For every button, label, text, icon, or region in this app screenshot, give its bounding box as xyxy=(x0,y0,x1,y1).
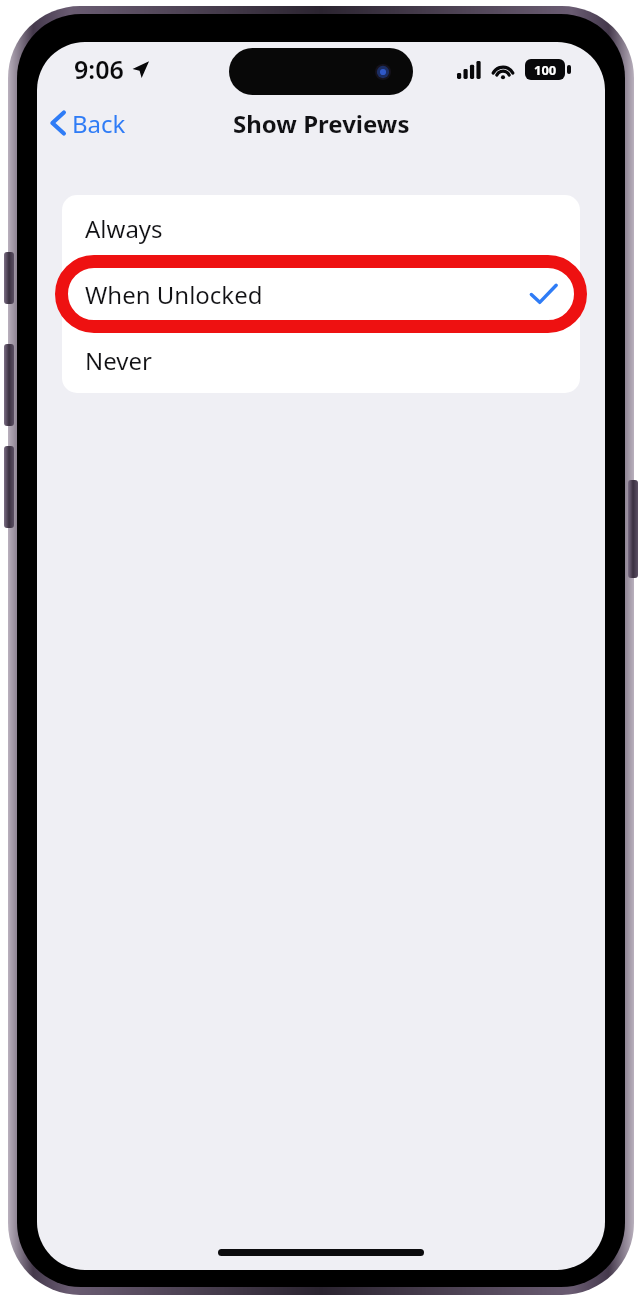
staticText: 100 xyxy=(534,61,557,79)
button[interactable]: When Unlocked xyxy=(62,261,580,327)
staticText: When Unlocked xyxy=(85,278,263,311)
staticText: Show Previews xyxy=(233,107,410,140)
staticText: Never xyxy=(85,344,152,377)
button[interactable]: Back xyxy=(37,99,138,147)
button[interactable]: Never xyxy=(62,327,580,393)
staticText: 9:06 xyxy=(74,52,124,86)
staticText: Always xyxy=(85,212,163,245)
button[interactable]: Always xyxy=(62,195,580,261)
staticText: Back xyxy=(72,107,126,140)
